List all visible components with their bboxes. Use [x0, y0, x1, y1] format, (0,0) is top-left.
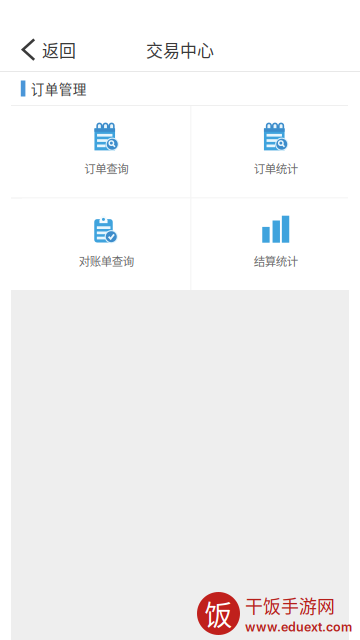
button[interactable]: 订单统计	[191, 106, 360, 197]
staticText: 交易中心	[146, 37, 214, 62]
button[interactable]: 订单查询	[22, 106, 190, 197]
staticText: 干饭手游网	[245, 592, 335, 618]
staticText: www.eduext.com	[245, 619, 352, 635]
button[interactable]: 返回	[0, 28, 90, 70]
staticText: 订单查询	[84, 160, 128, 177]
staticText: 订单统计	[254, 160, 298, 177]
staticText: 返回	[42, 37, 76, 62]
staticText: 结算统计	[254, 252, 298, 269]
button[interactable]: 对账单查询	[22, 198, 190, 290]
button[interactable]: 结算统计	[191, 198, 360, 290]
staticText: 订单管理	[31, 79, 87, 98]
staticText: 对账单查询	[79, 252, 134, 269]
staticText: 饭	[204, 593, 232, 634]
